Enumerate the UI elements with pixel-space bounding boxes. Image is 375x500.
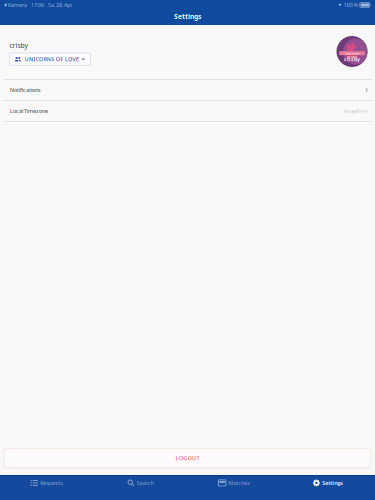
staticText: Notifications — [10, 86, 41, 93]
staticText: OF LOVE — [347, 55, 357, 59]
button[interactable]: Matches — [187, 475, 281, 500]
staticText: LOGOUT — [175, 455, 199, 462]
staticText: UNICORNS OF LOVE — [25, 56, 79, 63]
staticText: Search — [137, 479, 154, 486]
staticText: Sa. 28. Apr. — [48, 1, 72, 9]
button[interactable]: Search — [94, 475, 188, 500]
button[interactable]: Local Timezone — [0, 101, 375, 121]
staticText: Kamera — [8, 1, 27, 9]
button[interactable]: Notifications — [0, 80, 375, 100]
button[interactable]: Requests — [0, 475, 94, 500]
button[interactable]: Account — [336, 36, 367, 67]
staticText: Settings — [322, 479, 343, 486]
staticText: 17:06 — [31, 1, 44, 9]
button[interactable]: Settings — [281, 475, 375, 500]
button[interactable]: LOGOUT — [4, 448, 371, 468]
staticText: crisby — [9, 41, 27, 50]
staticText: Local Timezone — [10, 107, 48, 114]
staticText: 100 % — [344, 1, 358, 9]
staticText: crisby — [344, 56, 360, 63]
staticText: UNICORNS — [345, 52, 359, 55]
button[interactable]: UNICORNS OF LOVE — [9, 53, 91, 65]
staticText: Matches — [228, 479, 250, 486]
staticText: Settings — [174, 12, 201, 21]
staticText: Requests — [40, 479, 63, 486]
staticText: Europe/Berlin — [344, 108, 368, 114]
